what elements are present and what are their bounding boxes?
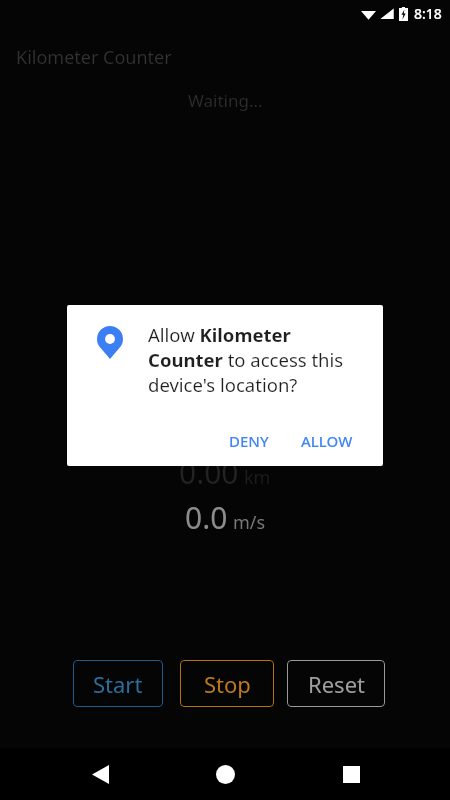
button[interactable]: Start [73, 660, 163, 707]
button[interactable]: Recent apps [325, 748, 377, 800]
staticText: Kilometer Counter [16, 45, 172, 70]
staticText: m/s [233, 510, 266, 535]
staticText: ALLOW [301, 431, 353, 451]
staticText: Start [93, 669, 143, 699]
staticText: 0.0 [185, 497, 228, 538]
staticText: Waiting... [188, 89, 263, 112]
staticText: DENY [229, 431, 269, 451]
staticText: Stop [204, 669, 251, 699]
staticText: km [244, 465, 271, 490]
button[interactable]: DENY [217, 423, 281, 459]
button[interactable]: Reset [287, 660, 385, 707]
staticText: Reset [308, 669, 365, 699]
button[interactable]: ALLOW [289, 423, 365, 459]
button[interactable]: Back [74, 748, 126, 800]
staticText: Allow Kilometer Counter to access this d… [148, 322, 370, 397]
button[interactable]: Home [199, 748, 251, 800]
staticText: 0.00 [179, 452, 239, 493]
button[interactable]: Stop [180, 660, 274, 707]
staticText: 8:18 [414, 4, 442, 23]
